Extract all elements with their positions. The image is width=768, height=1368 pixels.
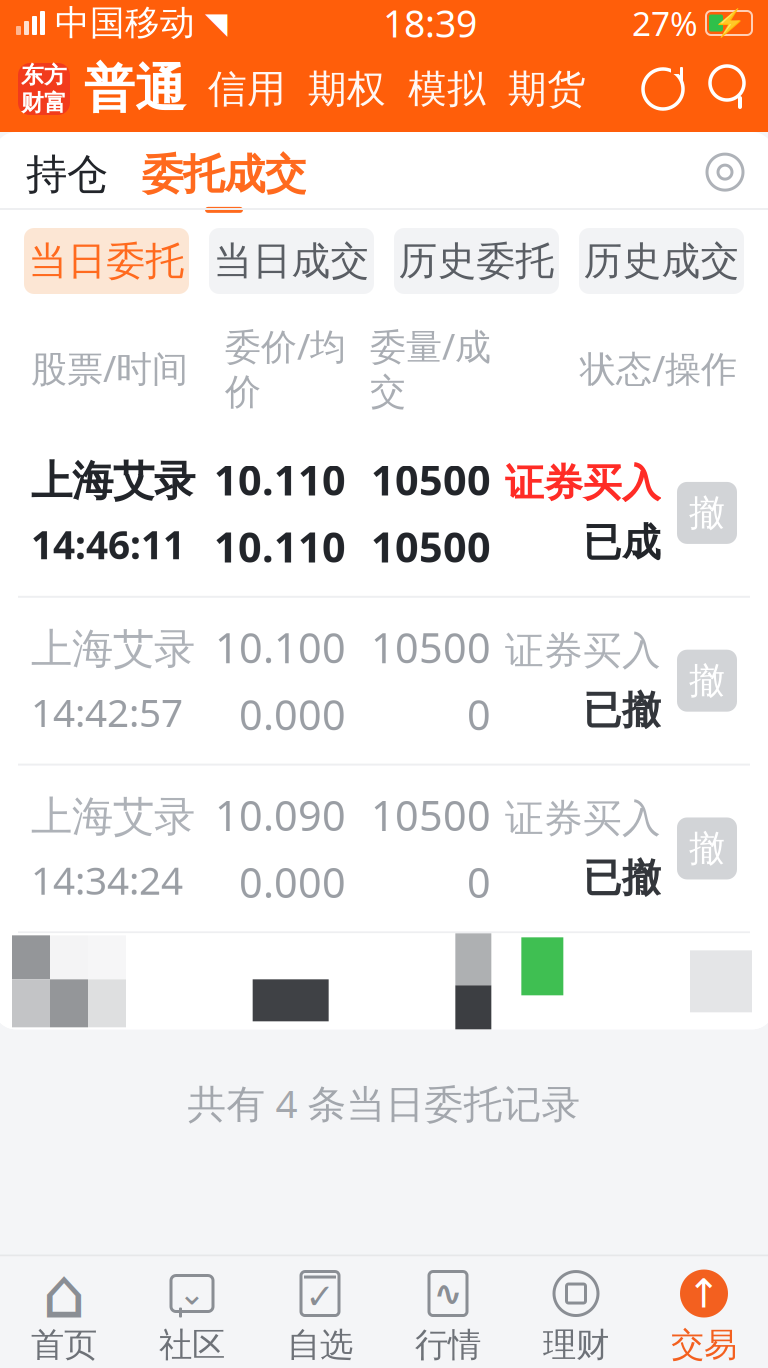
- button[interactable]: 撤: [677, 817, 737, 879]
- staticText: 18:39: [383, 0, 477, 48]
- button[interactable]: ⌂: [0, 1256, 128, 1368]
- staticText: 信用: [208, 65, 286, 113]
- button[interactable]: 理财: [512, 1256, 640, 1368]
- staticText: 10.110: [214, 452, 346, 507]
- staticText: 上海艾录: [31, 624, 195, 674]
- staticText: 0: [467, 854, 491, 909]
- button[interactable]: ⌄: [128, 1256, 256, 1368]
- staticText: 委价/均价: [225, 322, 346, 414]
- staticText: 10500: [371, 788, 491, 842]
- button[interactable]: 撤: [677, 482, 737, 544]
- staticText: 10500: [371, 452, 491, 507]
- staticText: 已成: [583, 519, 661, 566]
- staticText: 当日成交: [213, 237, 369, 285]
- button[interactable]: 期权: [286, 65, 386, 113]
- staticText: 27%: [632, 1, 698, 45]
- staticText: 证券买入: [505, 459, 661, 507]
- staticText: 自选: [287, 1324, 353, 1365]
- staticText: 财富: [21, 89, 67, 117]
- button[interactable]: 历史成交: [579, 228, 744, 294]
- button[interactable]: ↑: [640, 1256, 768, 1368]
- button[interactable]: ∿: [384, 1256, 512, 1368]
- staticText: 14:34:24: [31, 854, 183, 905]
- staticText: ⚡: [712, 8, 745, 38]
- button[interactable]: 搜索: [686, 66, 750, 112]
- staticText: 10.110: [214, 519, 346, 574]
- staticText: 期货: [508, 65, 586, 113]
- staticText: 普通: [84, 58, 186, 120]
- button[interactable]: 东方财富: [18, 63, 70, 115]
- staticText: 持仓: [26, 149, 108, 200]
- button[interactable]: 模拟: [386, 65, 486, 113]
- staticText: 历史委托: [398, 237, 554, 285]
- staticText: ⌄: [178, 1275, 205, 1312]
- staticText: 证券买入: [505, 627, 661, 675]
- staticText: 0.000: [239, 687, 346, 742]
- staticText: 东方: [21, 61, 67, 89]
- staticText: 上海艾录: [31, 791, 195, 842]
- staticText: 委量/成交: [370, 322, 491, 414]
- staticText: 撤: [689, 491, 725, 535]
- staticText: ↑: [687, 1271, 721, 1316]
- staticText: 首页: [31, 1324, 97, 1365]
- button[interactable]: 信用: [186, 65, 286, 113]
- staticText: 交易: [671, 1324, 737, 1365]
- staticText: 模拟: [408, 65, 486, 113]
- staticText: 当日委托: [28, 237, 184, 285]
- button[interactable]: 当日成交: [209, 228, 374, 294]
- staticText: ◥: [205, 6, 228, 40]
- staticText: 期权: [308, 65, 386, 113]
- button[interactable]: 委托成交: [112, 149, 310, 213]
- staticText: 理财: [543, 1324, 609, 1365]
- staticText: 0: [467, 687, 491, 742]
- staticText: 委托成交: [142, 149, 306, 200]
- staticText: 0.000: [239, 854, 346, 909]
- staticText: 已撤: [583, 687, 661, 734]
- staticText: 10500: [371, 519, 491, 574]
- button[interactable]: ✓: [256, 1256, 384, 1368]
- staticText: 14:46:11: [31, 519, 185, 570]
- button[interactable]: 持仓: [22, 149, 112, 213]
- staticText: 状态/操作: [580, 344, 737, 392]
- staticText: ⌂: [42, 1254, 86, 1333]
- staticText: 撤: [689, 659, 725, 703]
- staticText: 共有 4 条当日委托记录: [187, 1077, 580, 1129]
- staticText: 10.100: [215, 620, 346, 675]
- button[interactable]: 期货: [486, 65, 586, 113]
- staticText: 撤: [689, 826, 725, 871]
- staticText: 已撤: [583, 854, 661, 902]
- staticText: 14:42:57: [31, 686, 183, 738]
- button[interactable]: 刷新: [640, 66, 686, 112]
- staticText: ✓: [305, 1277, 334, 1316]
- button[interactable]: 撤: [677, 650, 737, 712]
- staticText: 10.090: [215, 788, 346, 842]
- staticText: 历史成交: [583, 237, 739, 285]
- button[interactable]: 普通: [70, 58, 186, 120]
- staticText: 上海艾录: [31, 456, 195, 507]
- staticText: 中国移动: [55, 2, 195, 44]
- staticText: 股票/时间: [31, 344, 188, 392]
- button[interactable]: 历史委托: [394, 228, 559, 294]
- staticText: 证券买入: [505, 795, 661, 842]
- button[interactable]: 当日委托: [24, 228, 189, 294]
- staticText: 行情: [415, 1324, 481, 1365]
- staticText: 社区: [159, 1324, 225, 1365]
- button[interactable]: 设置: [704, 149, 746, 193]
- staticText: 10500: [371, 620, 491, 675]
- staticText: ∿: [433, 1274, 462, 1313]
